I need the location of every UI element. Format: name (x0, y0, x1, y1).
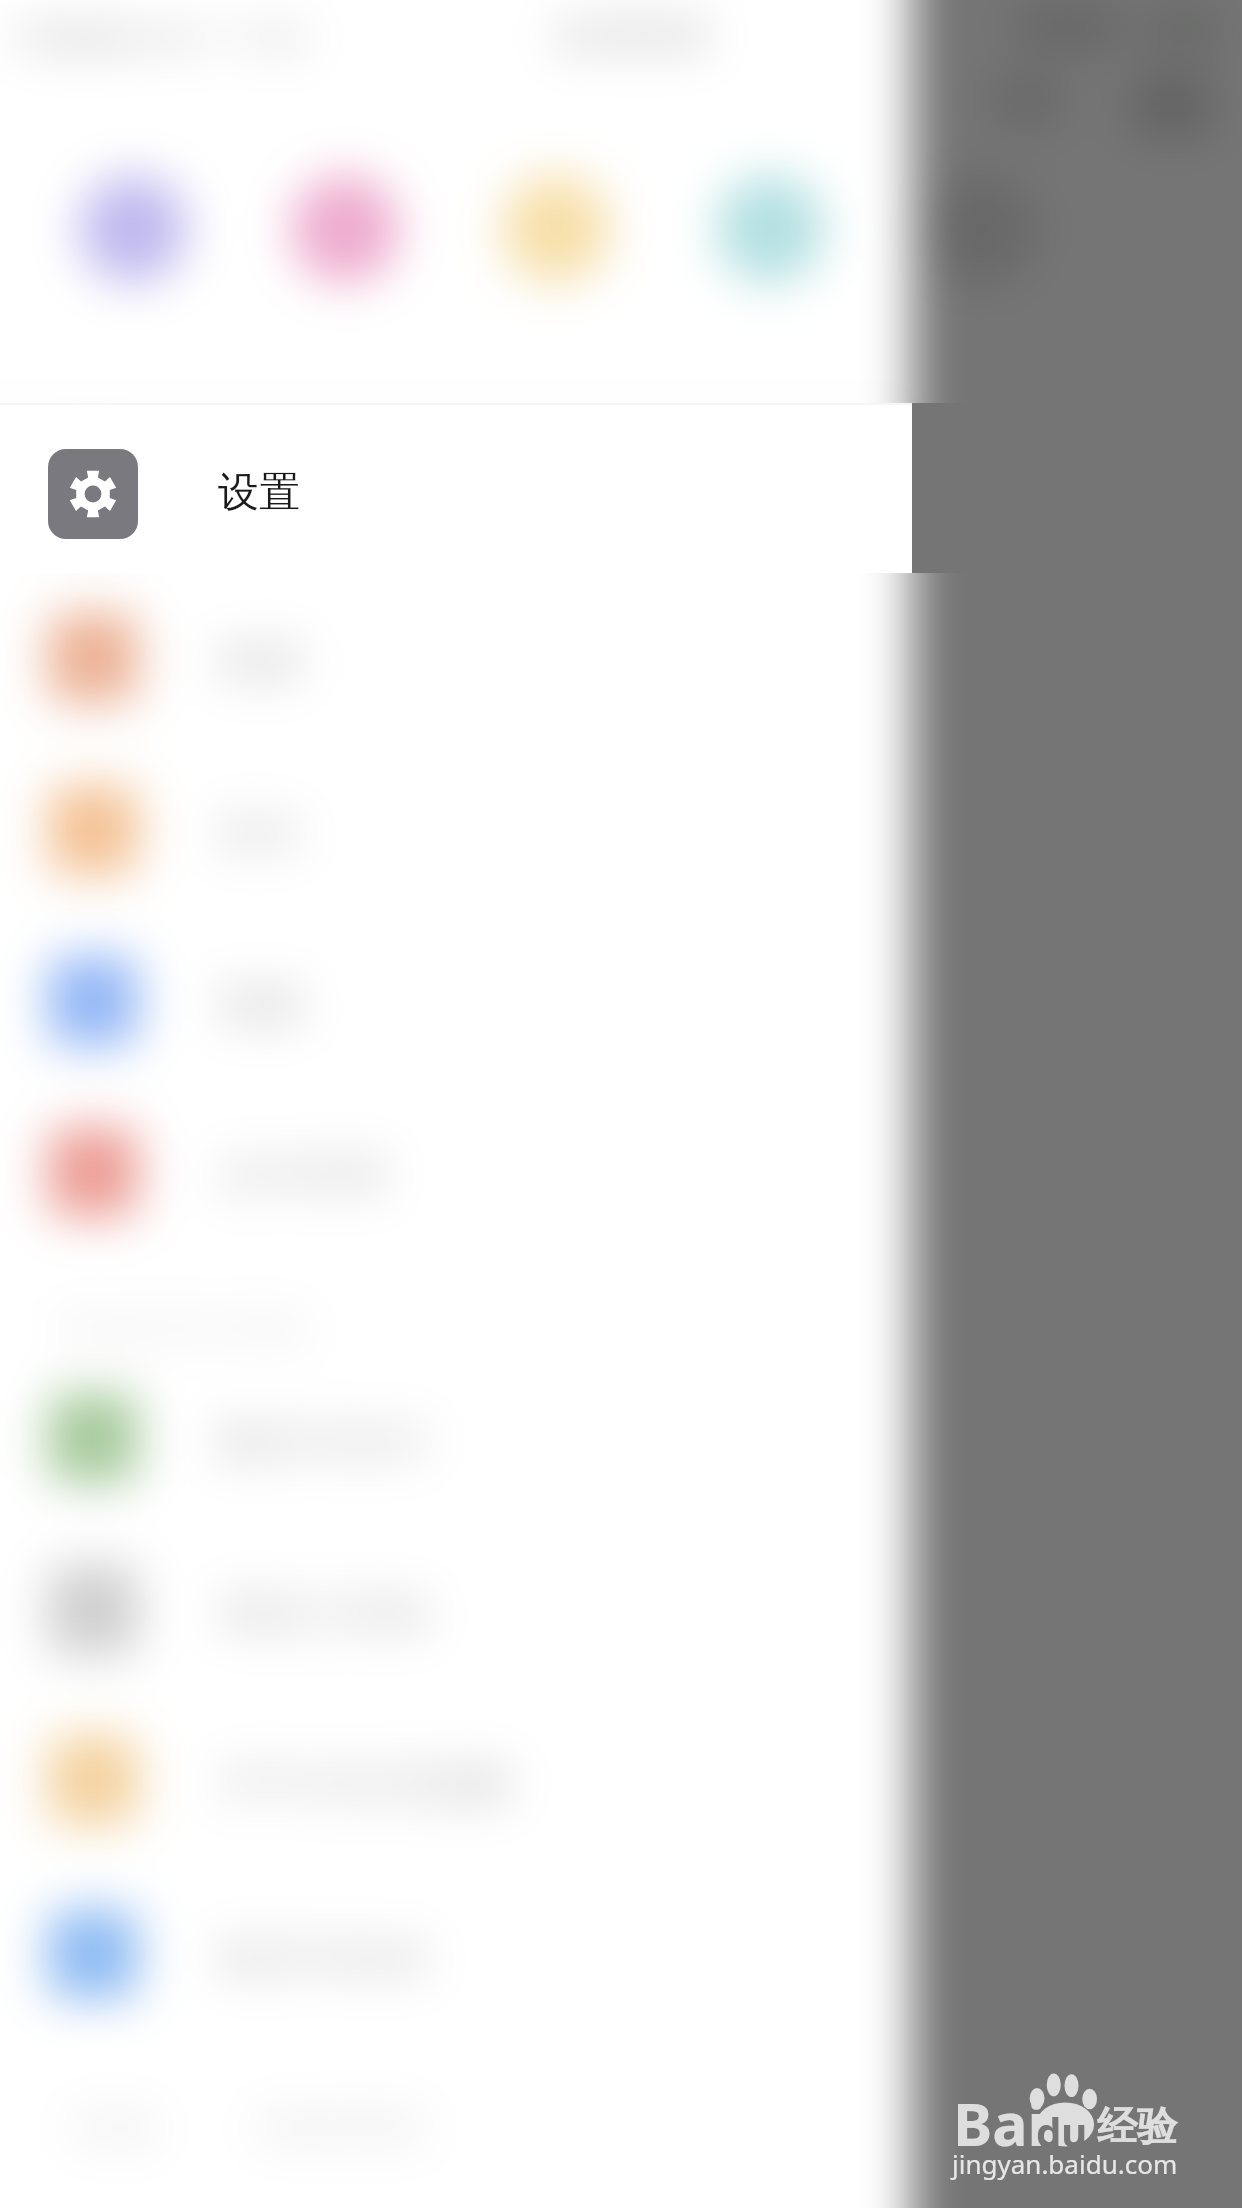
staticText: du (1036, 2104, 1088, 2158)
button[interactable]: 文件管理 (0, 1086, 1242, 1258)
staticText: 设置 (218, 465, 302, 518)
button[interactable]: 电话与短信 (0, 1868, 1242, 2040)
button[interactable]: 天气与日历提醒 (0, 1694, 1242, 1866)
button[interactable]: 音乐 (0, 744, 1242, 916)
button[interactable]: 相册 (0, 572, 1242, 744)
staticText: 经验 (1097, 2101, 1177, 2151)
staticText: jingyan.baidu.com (952, 2146, 1178, 2181)
button[interactable]: 视频 (0, 915, 1242, 1087)
button[interactable]: 微信与支付 (0, 1352, 1242, 1524)
button[interactable]: 设置 (0, 403, 912, 573)
button[interactable]: 设置 (0, 401, 1242, 573)
button[interactable]: 系统工具箱 (0, 1524, 1242, 1696)
staticText: Bai (953, 2083, 1046, 2163)
staticText: 设置 (218, 467, 300, 519)
